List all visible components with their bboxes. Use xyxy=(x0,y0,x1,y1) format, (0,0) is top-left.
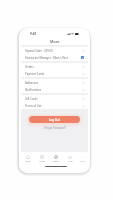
staticText: Terms of Use xyxy=(25,104,83,108)
button[interactable]: Menu xyxy=(49,155,63,163)
button[interactable]: Terms of Use xyxy=(21,102,88,109)
button[interactable]: More xyxy=(77,155,88,163)
staticText: Payment Cards xyxy=(25,72,83,76)
staticText: Home xyxy=(25,160,31,163)
staticText: Addresses xyxy=(25,81,83,85)
button[interactable]: Addresses xyxy=(21,79,88,86)
staticText: Orders xyxy=(25,65,83,69)
button[interactable]: Forgot Password? xyxy=(42,126,68,130)
button[interactable]: Orders xyxy=(35,155,49,163)
staticText: Forgot Password? xyxy=(44,126,66,130)
button[interactable]: Repeat Order - $39.00 xyxy=(21,47,88,54)
staticText: Menu xyxy=(53,160,59,163)
button[interactable]: Notifications xyxy=(21,86,88,93)
staticText: Log Out xyxy=(49,118,61,122)
staticText: 9:41 xyxy=(30,32,37,36)
button[interactable]: Orders xyxy=(21,63,88,70)
staticText: Gift Cards xyxy=(25,97,83,101)
button[interactable]: Restaurant Manager - Mark's Rest. xyxy=(21,54,88,61)
button[interactable]: Log Out xyxy=(29,116,80,123)
button[interactable]: Stats xyxy=(63,155,77,163)
staticText: Notifications xyxy=(25,88,83,92)
staticText: Stats xyxy=(68,160,73,163)
staticText: Restaurant Manager - Mark's Rest. xyxy=(25,56,81,60)
button[interactable]: Payment Cards xyxy=(21,70,88,77)
staticText: More xyxy=(80,160,86,163)
staticText: Repeat Order - $39.00 xyxy=(25,49,83,53)
staticText: More xyxy=(50,39,60,44)
staticText: Orders xyxy=(39,160,46,163)
button[interactable]: Home xyxy=(21,155,35,163)
button[interactable]: Gift Cards xyxy=(21,95,88,102)
